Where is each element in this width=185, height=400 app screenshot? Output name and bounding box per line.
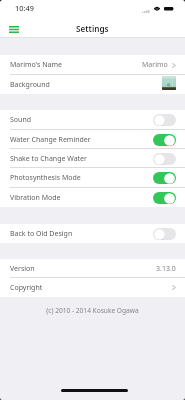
staticText: Settings: [76, 23, 109, 34]
staticText: 3.13.0: [156, 264, 176, 274]
button[interactable]: Version: [0, 259, 185, 278]
button[interactable]: Toggle off: [153, 228, 176, 240]
staticText: Water Change Reminder: [10, 135, 91, 145]
button[interactable]: Toggle on: [153, 172, 176, 184]
staticText: Photosynthesis Mode: [10, 173, 81, 183]
staticText: Marimo's Name: [10, 60, 62, 70]
staticText: Copyright: [10, 283, 43, 293]
staticText: Marimo: [142, 60, 168, 70]
button[interactable]: Menu: [5, 21, 22, 38]
staticText: Back to Old Design: [10, 229, 73, 239]
button[interactable]: Vibration Mode: [0, 188, 185, 207]
button[interactable]: Sound: [0, 110, 185, 130]
button[interactable]: Back to Old Design: [0, 224, 185, 243]
staticText: Sound: [10, 115, 32, 125]
button[interactable]: Background: [0, 75, 185, 94]
button[interactable]: Toggle on: [153, 134, 176, 146]
button[interactable]: Toggle off: [153, 114, 176, 126]
button[interactable]: Marimo's Name: [0, 55, 185, 75]
button[interactable]: Photosynthesis Mode: [0, 168, 185, 188]
staticText: Version: [10, 264, 35, 274]
button[interactable]: Shake to Change Water: [0, 149, 185, 168]
staticText: (c) 2010 - 2014 Kosuke Ogawa: [0, 306, 185, 315]
button[interactable]: Toggle on: [153, 192, 176, 204]
button[interactable]: Water Change Reminder: [0, 130, 185, 149]
staticText: Shake to Change Water: [10, 154, 87, 164]
staticText: Background: [10, 80, 50, 90]
button[interactable]: Copyright: [0, 278, 185, 297]
button[interactable]: Toggle off: [153, 153, 176, 165]
staticText: 10:49: [15, 3, 34, 13]
staticText: Vibration Mode: [10, 193, 61, 203]
